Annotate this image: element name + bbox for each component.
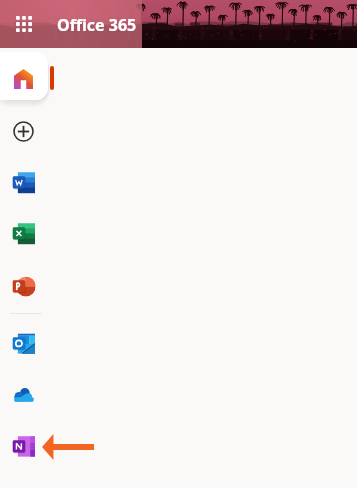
button[interactable]: Create new bbox=[0, 108, 46, 154]
button[interactable]: OneDrive bbox=[0, 371, 46, 417]
button[interactable]: Home bbox=[0, 52, 48, 100]
button[interactable]: OneNote bbox=[0, 423, 46, 469]
button[interactable]: Excel bbox=[0, 210, 46, 256]
staticText: Office 365 bbox=[57, 14, 137, 36]
button[interactable]: Outlook bbox=[0, 320, 46, 366]
button[interactable]: Word bbox=[0, 159, 46, 205]
button[interactable]: PowerPoint bbox=[0, 263, 46, 309]
button[interactable]: App launcher bbox=[0, 0, 47, 48]
